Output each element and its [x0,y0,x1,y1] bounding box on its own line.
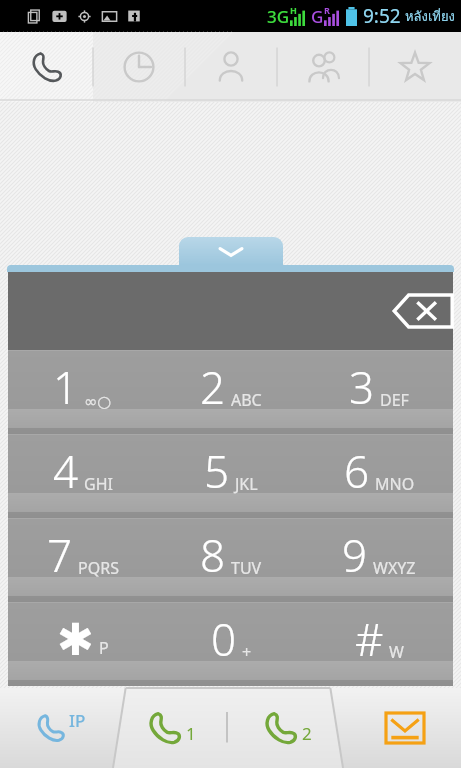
staticText: # [355,609,384,669]
staticText: 9:52 [363,3,401,29]
button[interactable]: IP call [16,692,102,764]
button[interactable]: 8 [157,518,305,602]
button[interactable]: Dialer [0,32,93,102]
staticText: H [290,4,297,16]
staticText: 1 [53,357,79,417]
staticText: 5 [204,441,230,501]
staticText: WXYZ [373,557,416,579]
staticText: R [324,4,330,16]
staticText: JKL [235,473,258,495]
staticText: TUV [231,557,262,579]
staticText: 4 [53,441,79,501]
button[interactable]: # [305,602,453,686]
button[interactable]: ✱ [8,602,157,686]
button[interactable]: 1 [8,350,157,434]
staticText: PQRS [78,557,119,579]
button[interactable]: 6 [305,434,453,518]
staticText: 2 [200,357,226,417]
staticText: MNO [375,473,415,495]
button[interactable]: Contacts [185,32,277,102]
button[interactable]: Call with SIM 1 [113,688,227,768]
staticText: W [389,641,404,663]
staticText: ✱ [57,614,94,665]
button[interactable]: Hide keypad [179,237,283,265]
staticText: 3G [267,5,290,28]
staticText: DEF [380,389,409,411]
button[interactable]: 0 [157,602,305,686]
staticText: หลังเที่ยง [405,6,455,27]
button[interactable]: Groups [277,32,369,102]
staticText: 6 [344,441,370,501]
button[interactable]: 7 [8,518,157,602]
staticText: 0 [211,609,237,669]
staticText: 3 [349,357,375,417]
staticText: IP [69,709,86,732]
staticText: G [311,5,324,28]
staticText: GHI [84,473,113,495]
staticText: 2 [302,722,312,745]
button[interactable]: Favourites [369,32,461,102]
button[interactable]: Call log [93,32,185,102]
button[interactable]: 2 [157,350,305,434]
staticText: ABC [231,389,262,411]
button[interactable]: 3 [305,350,453,434]
button[interactable]: Call with SIM 2 [228,688,343,768]
staticText: + [242,641,252,663]
button[interactable]: Send message [367,692,443,764]
button[interactable]: 9 [305,518,453,602]
button[interactable]: 4 [8,434,157,518]
button[interactable]: 5 [157,434,305,518]
staticText: 7 [47,525,73,585]
staticText: 1 [186,722,196,745]
button[interactable]: Backspace [391,282,453,340]
staticText: 8 [200,525,226,585]
staticText: 9 [342,525,368,585]
staticText: ∞○ [84,392,112,411]
staticText: P [99,637,109,659]
